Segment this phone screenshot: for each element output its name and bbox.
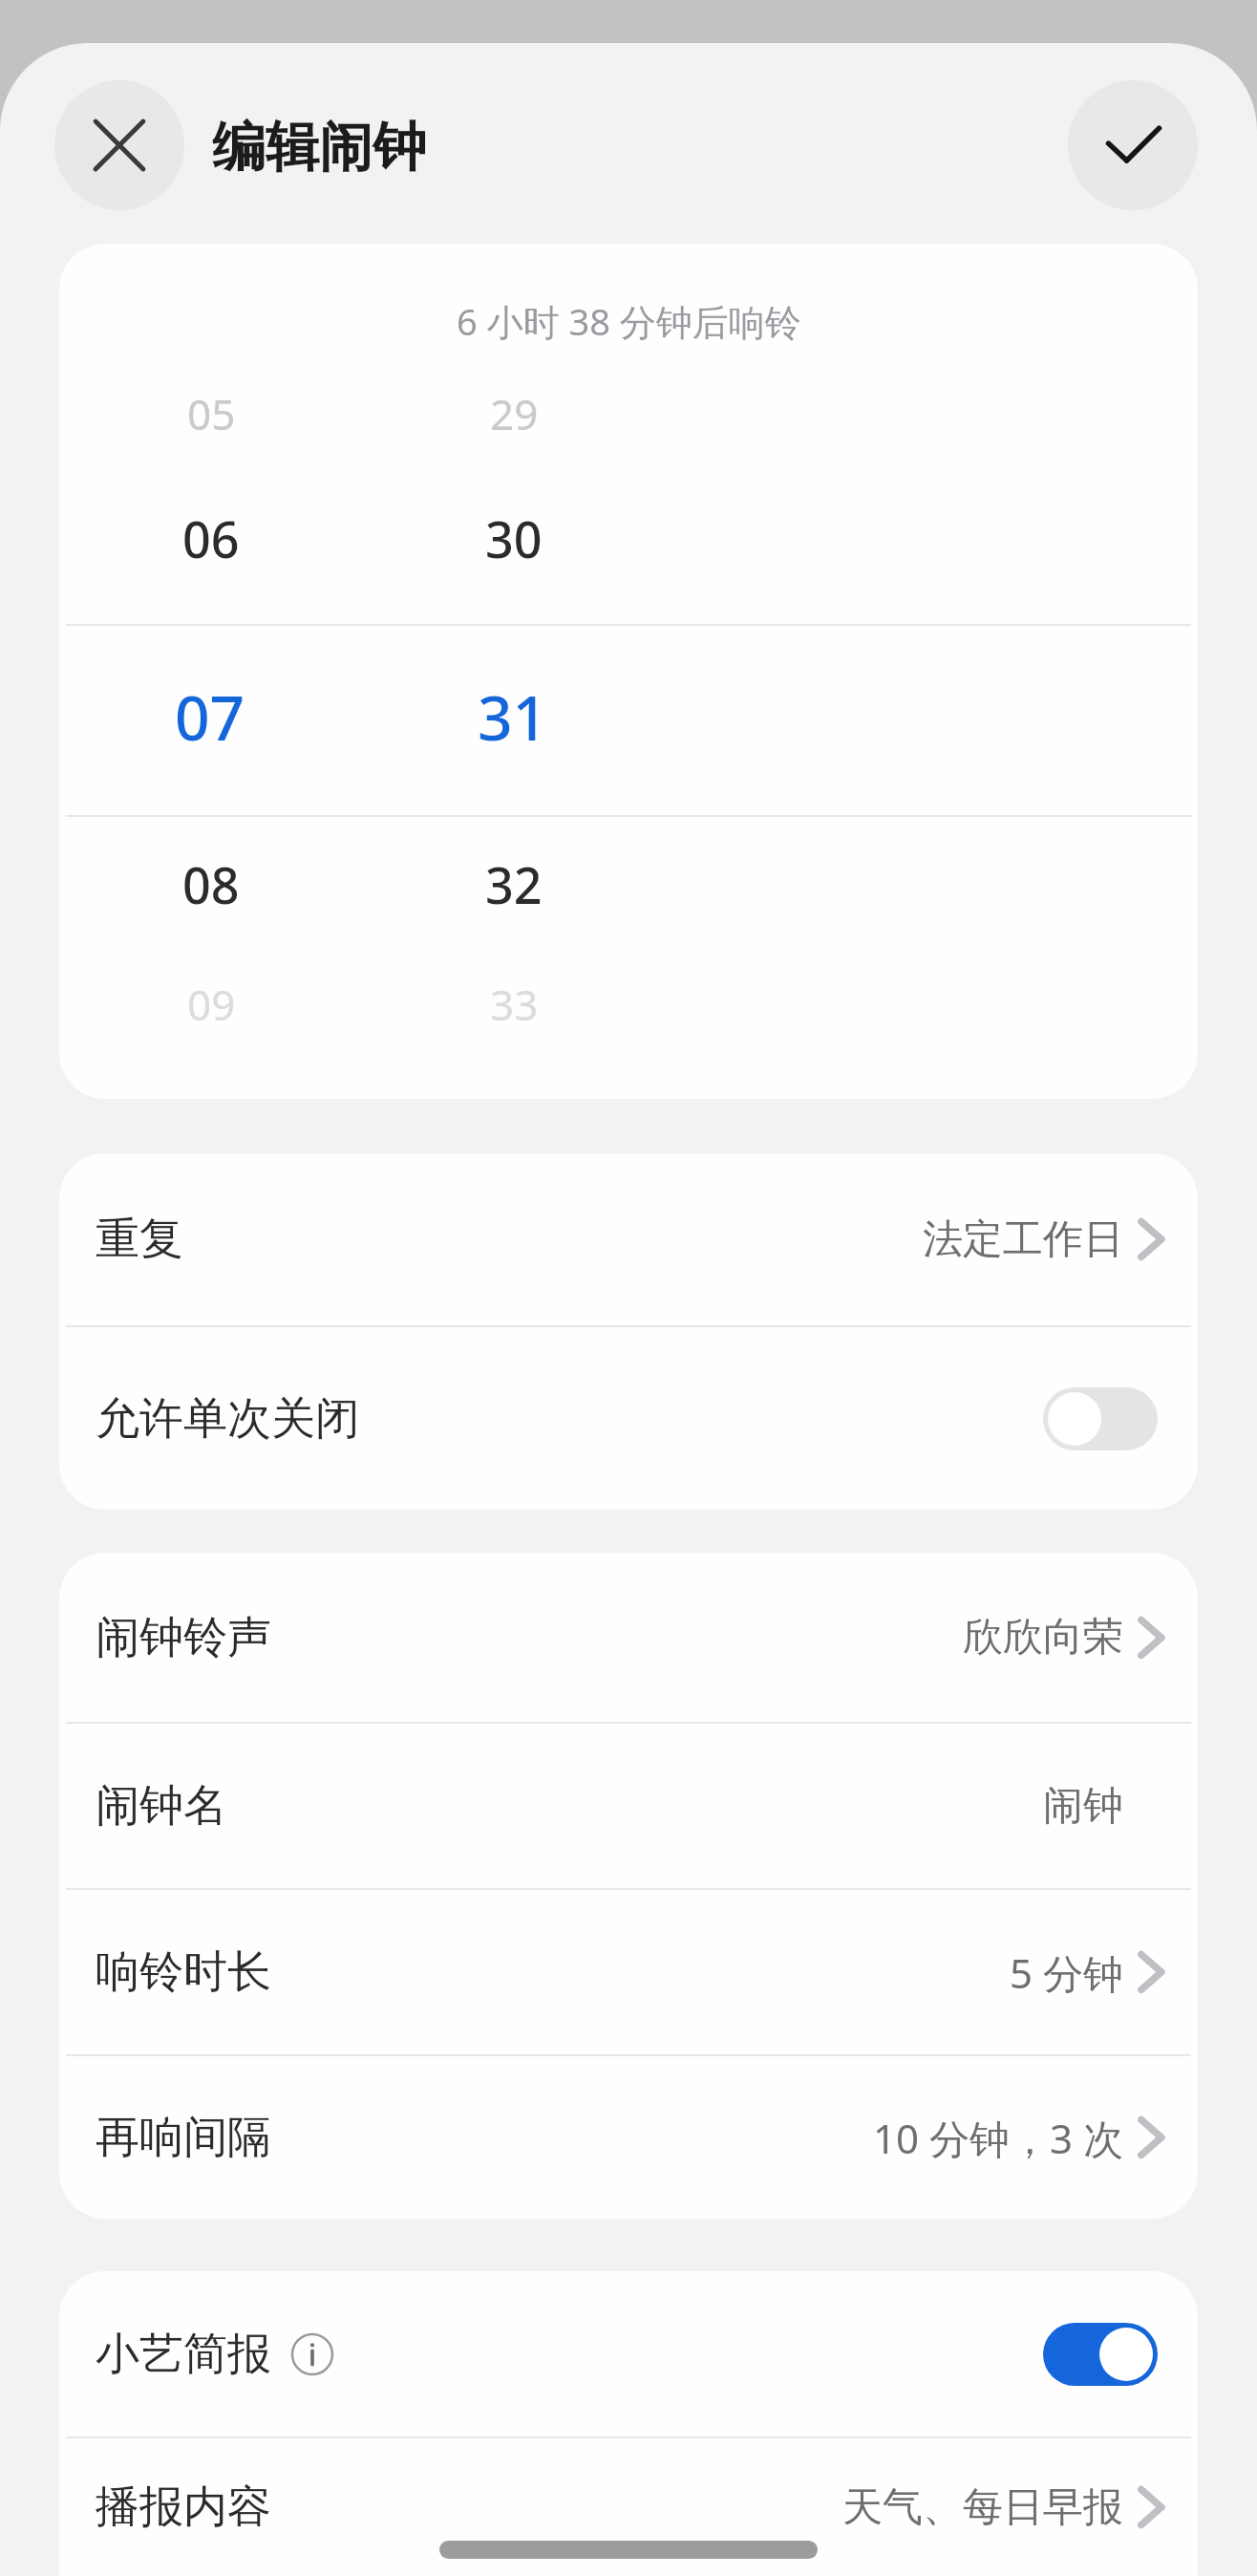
button[interactable]: 允许单次关闭	[59, 1327, 1198, 1510]
button[interactable]: 06	[182, 504, 240, 572]
staticText: 再响间隔	[96, 2110, 271, 2165]
staticText: 10 分钟，3 次	[873, 2111, 1123, 2165]
staticText: 闹钟	[1043, 1781, 1123, 1832]
staticText: 5 分钟	[1010, 1945, 1123, 2000]
staticText: 32	[485, 850, 543, 918]
staticText: 08	[182, 850, 240, 918]
button[interactable]: 已开启	[1043, 2323, 1158, 2386]
button[interactable]: 09	[187, 976, 236, 1033]
staticText: 播报内容	[96, 2479, 271, 2535]
staticText: 6 小时 38 分钟后响铃	[457, 296, 801, 346]
staticText: 09	[187, 976, 236, 1033]
staticText: 06	[182, 504, 240, 572]
staticText: 响铃时长	[96, 1944, 271, 2000]
staticText: 闹钟铃声	[96, 1610, 271, 1665]
staticText: 天气、每日早报	[842, 2482, 1123, 2533]
button[interactable]: 闹钟名	[59, 1724, 1198, 1888]
staticText: 欣欣向荣	[963, 1612, 1123, 1663]
button[interactable]: 闹钟铃声	[59, 1553, 1198, 1722]
other: 说明	[290, 2332, 334, 2376]
button[interactable]: 29	[490, 385, 539, 442]
staticText: 重复	[96, 1212, 183, 1267]
button[interactable]: 再响间隔	[59, 2056, 1198, 2219]
staticText: 编辑闹钟	[212, 114, 426, 182]
staticText: 33	[490, 976, 539, 1033]
staticText: 30	[485, 504, 543, 572]
staticText: 小艺简报	[96, 2327, 271, 2382]
button[interactable]: 33	[490, 976, 539, 1033]
button[interactable]: 07	[175, 676, 245, 759]
button[interactable]: 小艺简报	[59, 2271, 1198, 2436]
button[interactable]: 确定	[1068, 80, 1198, 210]
staticText: 29	[490, 385, 539, 442]
button[interactable]: 关闭	[54, 80, 184, 210]
button[interactable]: 30	[485, 504, 543, 572]
button[interactable]: 播报内容	[59, 2438, 1198, 2576]
staticText: 法定工作日	[923, 1214, 1123, 1265]
button[interactable]: 重复	[59, 1153, 1198, 1325]
staticText: 闹钟名	[96, 1778, 227, 1834]
staticText: 05	[187, 385, 236, 442]
staticText: 07	[175, 676, 245, 759]
button[interactable]: 05	[187, 385, 236, 442]
button[interactable]: 08	[182, 850, 240, 918]
staticText: 允许单次关闭	[96, 1391, 359, 1447]
staticText: 31	[478, 676, 548, 759]
button[interactable]: 已关闭	[1043, 1387, 1158, 1450]
button[interactable]: 31	[478, 676, 548, 759]
button[interactable]: 响铃时长	[59, 1890, 1198, 2054]
button[interactable]: 32	[485, 850, 543, 918]
